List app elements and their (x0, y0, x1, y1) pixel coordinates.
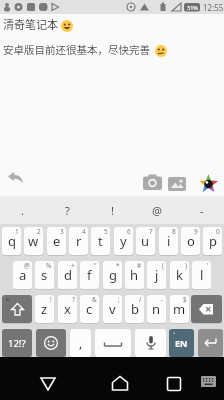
staticText: f (87, 266, 92, 284)
button[interactable]: r (69, 227, 88, 255)
staticText: w (28, 232, 39, 250)
button[interactable] (135, 329, 166, 357)
button[interactable]: y (114, 227, 133, 255)
staticText: s (41, 266, 48, 284)
button[interactable] (168, 177, 187, 192)
staticText: + (71, 261, 75, 270)
staticText: # (137, 261, 142, 270)
button[interactable] (198, 173, 219, 194)
staticText: n (152, 300, 161, 318)
staticText: u (141, 232, 150, 250)
button[interactable] (2, 295, 32, 323)
staticText: z (41, 300, 48, 318)
button[interactable]: ! (90, 196, 135, 224)
staticText: 2 (37, 227, 41, 236)
staticText: 3 (60, 227, 64, 236)
staticText: j (155, 266, 159, 284)
staticText: @ (24, 261, 30, 270)
staticText: 8 (172, 227, 176, 236)
staticText: g (109, 266, 117, 284)
button[interactable]: - (179, 196, 224, 224)
button[interactable]: q (2, 227, 21, 255)
button[interactable]: z (35, 295, 54, 323)
button[interactable]: h (125, 261, 144, 289)
button[interactable]: f (80, 261, 99, 289)
staticText: v (109, 300, 116, 318)
staticText: $ (183, 295, 187, 304)
staticText: i (167, 232, 171, 250)
button[interactable]: . (0, 196, 45, 224)
button[interactable]: g (103, 261, 122, 289)
button[interactable] (36, 372, 60, 396)
button[interactable]: i (159, 227, 178, 255)
staticText: . (21, 203, 24, 218)
staticText: x (64, 300, 71, 318)
staticText: o (187, 232, 195, 250)
staticText: c (86, 300, 93, 318)
button[interactable]: @ (134, 196, 179, 224)
staticText: " (94, 261, 97, 270)
button[interactable]: n (147, 295, 166, 323)
button[interactable]: 12!? (2, 329, 32, 357)
staticText: ) (185, 261, 187, 270)
staticText: b (131, 300, 139, 318)
button[interactable]: s (35, 261, 54, 289)
staticText: 4 (82, 227, 86, 236)
button[interactable]: t (91, 227, 110, 255)
staticText: ! (111, 203, 114, 218)
button[interactable]: j (147, 261, 166, 289)
button[interactable] (142, 172, 164, 192)
button[interactable]: EN (169, 329, 194, 357)
button[interactable]: m (170, 295, 189, 323)
staticText: 1 (15, 227, 19, 236)
staticText: - (161, 295, 164, 304)
staticText: h (130, 266, 139, 284)
staticText: EN (175, 337, 188, 349)
staticText: y (120, 232, 127, 250)
staticText: p (209, 232, 217, 250)
staticText: ? (72, 295, 75, 304)
button[interactable] (162, 372, 186, 396)
staticText: l (200, 266, 204, 284)
button[interactable]: v (103, 295, 122, 323)
button[interactable]: u (136, 227, 155, 255)
button[interactable]: c (80, 295, 99, 323)
staticText: ; (118, 295, 120, 304)
button[interactable]: ? (45, 196, 90, 224)
button[interactable]: k (170, 261, 189, 289)
staticText: 6 (127, 227, 131, 236)
button[interactable] (108, 372, 132, 396)
button[interactable] (191, 295, 222, 323)
button[interactable] (7, 170, 24, 186)
staticText: 7 (149, 227, 153, 236)
staticText: 12!? (8, 337, 26, 350)
staticText: @ (152, 203, 162, 218)
button[interactable]: w (24, 227, 43, 255)
button[interactable]: o (181, 227, 200, 255)
button[interactable] (95, 329, 131, 357)
staticText: ' (207, 261, 209, 270)
staticText: m (173, 300, 186, 318)
button[interactable]: x (58, 295, 77, 323)
staticText: a (19, 266, 27, 284)
staticText: 安卓版目前还很基本，尽快完善 (3, 42, 150, 57)
staticText: ( (162, 261, 164, 270)
staticText: e (53, 232, 61, 250)
staticText: , (79, 335, 83, 351)
button[interactable]: p (203, 227, 222, 255)
button[interactable]: d (58, 261, 77, 289)
button[interactable] (36, 329, 66, 357)
button[interactable]: a (13, 261, 32, 289)
button[interactable]: , (70, 329, 91, 357)
button[interactable]: e (47, 227, 66, 255)
staticText: d (64, 266, 72, 284)
button[interactable]: l (192, 261, 211, 289)
staticText: / (139, 295, 142, 304)
button[interactable] (198, 329, 223, 357)
staticText: k (176, 266, 183, 284)
button[interactable] (200, 375, 218, 389)
staticText: * (116, 261, 120, 270)
staticText: r (76, 232, 82, 250)
button[interactable]: b (125, 295, 144, 323)
staticText: % (46, 261, 52, 270)
